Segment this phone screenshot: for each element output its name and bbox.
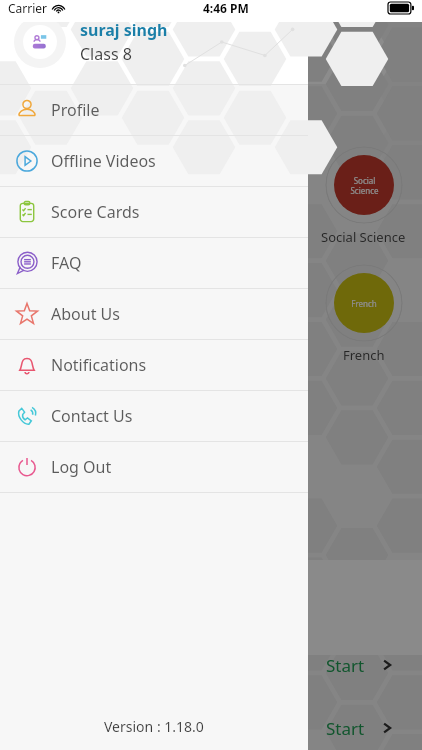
staticText: Log Out bbox=[51, 456, 112, 478]
staticText: Class 8 bbox=[80, 43, 132, 65]
staticText: Social Science bbox=[350, 175, 379, 196]
button[interactable]: Social Science bbox=[305, 146, 422, 246]
staticText: Start bbox=[326, 654, 365, 677]
staticText: suraj singh bbox=[80, 19, 168, 41]
staticText: Profile bbox=[51, 99, 100, 121]
button[interactable]: FAQ bbox=[0, 238, 308, 288]
staticText: French bbox=[343, 346, 385, 364]
button[interactable]: Score Cards bbox=[0, 187, 308, 237]
button[interactable]: Contact Us bbox=[0, 391, 308, 441]
staticText: Contact Us bbox=[51, 405, 133, 427]
button[interactable]: Log Out bbox=[0, 442, 308, 492]
staticText: Social Science bbox=[321, 228, 406, 246]
button[interactable]: Profile picture bbox=[14, 16, 66, 68]
staticText: Score Cards bbox=[51, 201, 140, 223]
staticText: 4:46 PM bbox=[203, 0, 249, 16]
button[interactable]: Notifications bbox=[332, 36, 358, 62]
staticText: FAQ bbox=[51, 252, 82, 274]
staticText: Offline Videos bbox=[51, 150, 156, 172]
staticText: French bbox=[351, 298, 377, 309]
staticText: About Us bbox=[51, 303, 120, 325]
staticText: Start bbox=[326, 717, 365, 740]
button[interactable]: Notifications bbox=[0, 340, 308, 390]
button[interactable]: Offline Videos bbox=[0, 136, 308, 186]
button[interactable]: Start bbox=[300, 708, 422, 748]
staticText: Carrier bbox=[8, 0, 48, 16]
button[interactable]: Start bbox=[300, 645, 422, 685]
button[interactable]: French bbox=[305, 264, 422, 364]
staticText: Version : 1.18.0 bbox=[104, 717, 204, 736]
staticText: Class 8 bbox=[260, 41, 299, 57]
staticText: Notifications bbox=[51, 354, 147, 376]
button[interactable]: Profile bbox=[0, 85, 308, 135]
button[interactable]: About Us bbox=[0, 289, 308, 339]
button[interactable]: Class 8 bbox=[240, 36, 318, 62]
